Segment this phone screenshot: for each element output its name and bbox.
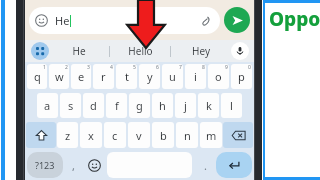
button[interactable]: Voice input (231, 42, 249, 60)
button[interactable]: He (49, 40, 109, 62)
button[interactable]: k (198, 93, 219, 118)
staticText: Hey (192, 44, 210, 58)
staticText: 2 (65, 64, 68, 71)
button[interactable]: o (208, 64, 229, 89)
staticText: l (230, 98, 233, 113)
button[interactable]: s (60, 93, 81, 118)
button[interactable]: t (116, 64, 137, 89)
staticText: He (55, 13, 70, 28)
button[interactable]: c (104, 122, 126, 148)
staticText: 9 (225, 64, 228, 71)
button[interactable]: y (139, 64, 160, 89)
button[interactable]: Enter (216, 152, 252, 178)
staticText: o (215, 69, 222, 84)
staticText: a (44, 98, 51, 113)
button[interactable]: h (152, 93, 173, 118)
staticText: . (204, 158, 207, 173)
staticText: i (194, 69, 197, 84)
staticText: Oppo (269, 6, 320, 32)
staticText: 5 (133, 64, 136, 71)
staticText: j (184, 98, 187, 113)
staticText: Hello (128, 44, 153, 58)
staticText: ?123 (35, 159, 55, 171)
button[interactable]: w (49, 64, 69, 89)
staticText: 3 (87, 64, 90, 71)
button[interactable]: Emoji (83, 152, 105, 178)
button[interactable]: r (93, 64, 114, 89)
staticText: 7 (179, 64, 182, 71)
staticText: 0 (248, 64, 251, 71)
staticText: q (34, 69, 41, 84)
staticText: x (88, 128, 94, 143)
staticText: , (72, 158, 75, 173)
button[interactable]: Shift (26, 122, 56, 148)
button[interactable]: z (57, 122, 78, 148)
staticText: 4 (110, 64, 113, 71)
button[interactable]: f (106, 93, 127, 118)
staticText: k (206, 98, 212, 113)
staticText: m (206, 128, 217, 143)
button[interactable]: v (128, 122, 150, 148)
button[interactable]: g (129, 93, 150, 118)
staticText: y (147, 69, 153, 84)
button[interactable]: b (152, 122, 174, 148)
button[interactable]: Space (107, 152, 192, 178)
button[interactable]: Hey (171, 40, 231, 62)
button[interactable]: j (175, 93, 196, 118)
staticText: p (238, 69, 245, 84)
staticText: h (159, 98, 166, 113)
staticText: e (78, 69, 85, 84)
button[interactable]: Backspace (223, 122, 253, 148)
staticText: He (72, 44, 86, 58)
button[interactable]: d (83, 93, 104, 118)
staticText: n (184, 128, 191, 143)
staticText: d (90, 98, 97, 113)
staticText: 8 (202, 64, 205, 71)
button[interactable]: m (200, 122, 222, 148)
staticText: s (68, 98, 74, 113)
button[interactable]: p (231, 64, 252, 89)
staticText: 6 (156, 64, 159, 71)
button[interactable]: . (194, 152, 216, 178)
staticText: g (136, 98, 143, 113)
staticText: z (65, 128, 71, 143)
button[interactable]: a (37, 93, 58, 118)
button[interactable]: n (176, 122, 198, 148)
staticText: f (115, 98, 119, 113)
staticText: w (55, 69, 64, 84)
button[interactable]: l (221, 93, 242, 118)
button[interactable]: , (63, 152, 83, 178)
button[interactable]: He (29, 7, 220, 34)
staticText: c (112, 128, 118, 143)
staticText: b (160, 128, 167, 143)
button[interactable]: i (185, 64, 206, 89)
button[interactable]: Send (224, 7, 250, 33)
button[interactable]: e (71, 64, 91, 89)
staticText: r (101, 69, 106, 84)
button[interactable]: ?123 (27, 152, 63, 178)
button[interactable]: Toolbar (31, 42, 49, 60)
staticText: u (169, 69, 176, 84)
button[interactable]: q (27, 64, 47, 89)
staticText: 1 (43, 64, 46, 71)
button[interactable]: u (162, 64, 183, 89)
staticText: t (125, 69, 129, 84)
staticText: v (136, 128, 142, 143)
button[interactable]: x (80, 122, 102, 148)
button[interactable]: Hello (110, 40, 170, 62)
